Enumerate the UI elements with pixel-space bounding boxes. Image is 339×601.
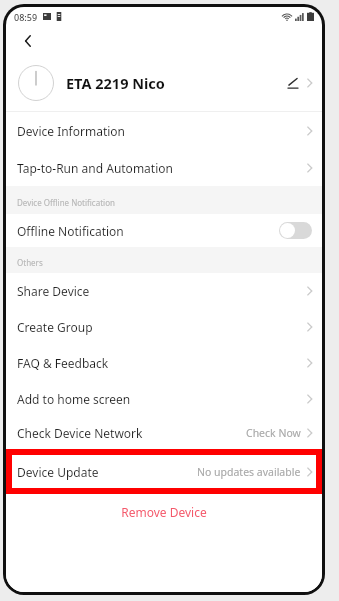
- staticText: Share Device: [17, 283, 90, 299]
- staticText: FAQ & Feedback: [17, 355, 109, 371]
- staticText: ETA 2219 Nico: [66, 73, 165, 93]
- staticText: 08:59: [14, 11, 38, 23]
- staticText: Others: [17, 257, 43, 268]
- staticText: Tap-to-Run and Automation: [17, 160, 173, 176]
- button[interactable]: Create Group: [6, 309, 322, 345]
- button[interactable]: Check Device Network: [6, 417, 322, 449]
- staticText: Offline Notification: [17, 223, 124, 239]
- staticText: Add to home screen: [17, 391, 131, 407]
- button[interactable]: Offline Notification: [6, 214, 322, 247]
- staticText: Check Now: [246, 426, 301, 440]
- button[interactable]: Device Information: [6, 112, 322, 149]
- staticText: Create Group: [17, 319, 93, 335]
- button[interactable]: Back: [14, 27, 42, 55]
- staticText: Remove Device: [121, 504, 207, 520]
- button[interactable]: Share Device: [6, 273, 322, 309]
- button[interactable]: Tap-to-Run and Automation: [6, 149, 322, 186]
- staticText: Device Offline Notification: [17, 197, 115, 208]
- staticText: No updates available: [197, 465, 301, 479]
- button[interactable]: Edit device name: [284, 74, 302, 92]
- button[interactable]: FAQ & Feedback: [6, 345, 322, 381]
- button[interactable]: Remove Device: [6, 494, 322, 592]
- button[interactable]: ETA 2219 Nico: [6, 55, 322, 111]
- staticText: Check Device Network: [17, 425, 143, 441]
- button[interactable]: Offline Notification switch, off: [279, 222, 312, 239]
- button[interactable]: Device Update: [12, 455, 316, 488]
- staticText: Device Update: [17, 464, 99, 480]
- staticText: Device Information: [17, 123, 126, 139]
- button[interactable]: Add to home screen: [6, 381, 322, 417]
